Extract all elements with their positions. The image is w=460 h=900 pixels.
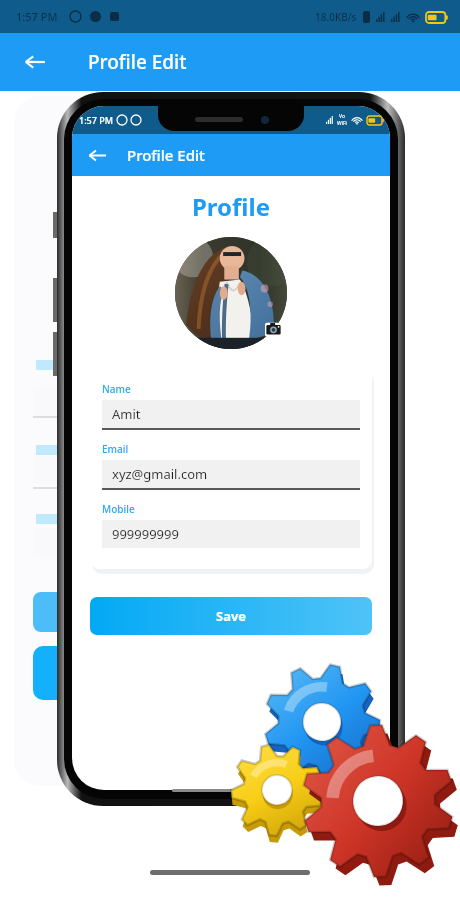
staticText: Name (102, 382, 131, 396)
staticText: WiFi (337, 120, 347, 127)
button[interactable]: Back (72, 134, 390, 176)
staticText: Profile Edit (88, 49, 187, 75)
button[interactable]: Change photo (265, 321, 282, 338)
staticText: Email (102, 442, 129, 456)
staticText: Profile (72, 190, 390, 223)
staticText: 999999999 (112, 525, 179, 543)
button[interactable]: Name (102, 382, 360, 430)
button[interactable]: Back (0, 33, 460, 91)
staticText: Amit (112, 405, 141, 423)
staticText: 18.0KB/s (315, 10, 357, 24)
staticText: Profile Edit (127, 145, 205, 165)
staticText: Save (216, 607, 247, 625)
button[interactable]: Email (102, 442, 360, 490)
button[interactable]: Save (90, 597, 372, 635)
staticText: 1:57 PM (79, 114, 113, 126)
button[interactable] (175, 237, 287, 349)
staticText: Vo (339, 113, 345, 120)
staticText: xyz@gmail.com (112, 465, 208, 483)
button[interactable]: Mobile (102, 502, 360, 548)
button[interactable]: Back (84, 142, 110, 168)
staticText: Mobile (102, 502, 135, 516)
staticText: 1:57 PM (16, 9, 58, 24)
button[interactable]: Back (20, 47, 50, 77)
